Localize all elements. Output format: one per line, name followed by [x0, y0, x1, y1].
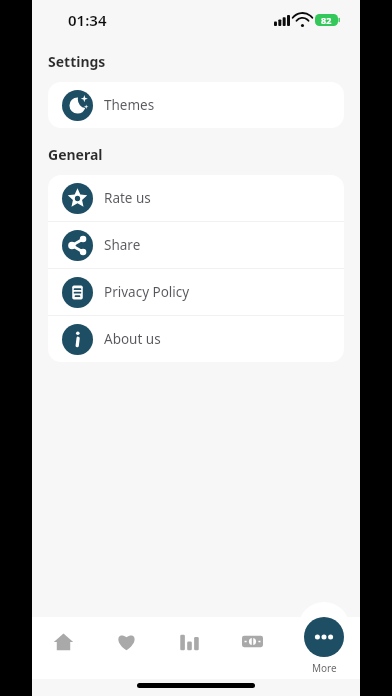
staticText: Themes — [104, 96, 155, 114]
staticText: General — [48, 145, 103, 164]
staticText: Share — [104, 236, 141, 254]
staticText: Privacy Policy — [104, 283, 190, 301]
button[interactable]: Stats — [158, 631, 221, 679]
button[interactable]: More — [304, 617, 344, 675]
button[interactable]: Privacy Policy — [48, 269, 344, 315]
staticText: 01:34 — [68, 10, 107, 30]
button[interactable]: Share — [48, 222, 344, 268]
button[interactable]: Home — [32, 631, 95, 679]
staticText: About us — [104, 330, 161, 348]
staticText: More — [312, 661, 337, 675]
button[interactable]: Rate us — [48, 175, 344, 221]
button[interactable]: Themes — [48, 82, 344, 128]
staticText: 82 — [321, 14, 332, 26]
staticText: Rate us — [104, 189, 151, 207]
button[interactable]: Money — [221, 631, 284, 679]
button[interactable]: About us — [48, 316, 344, 362]
button[interactable]: Favorites — [95, 631, 158, 679]
staticText: Settings — [48, 52, 106, 71]
